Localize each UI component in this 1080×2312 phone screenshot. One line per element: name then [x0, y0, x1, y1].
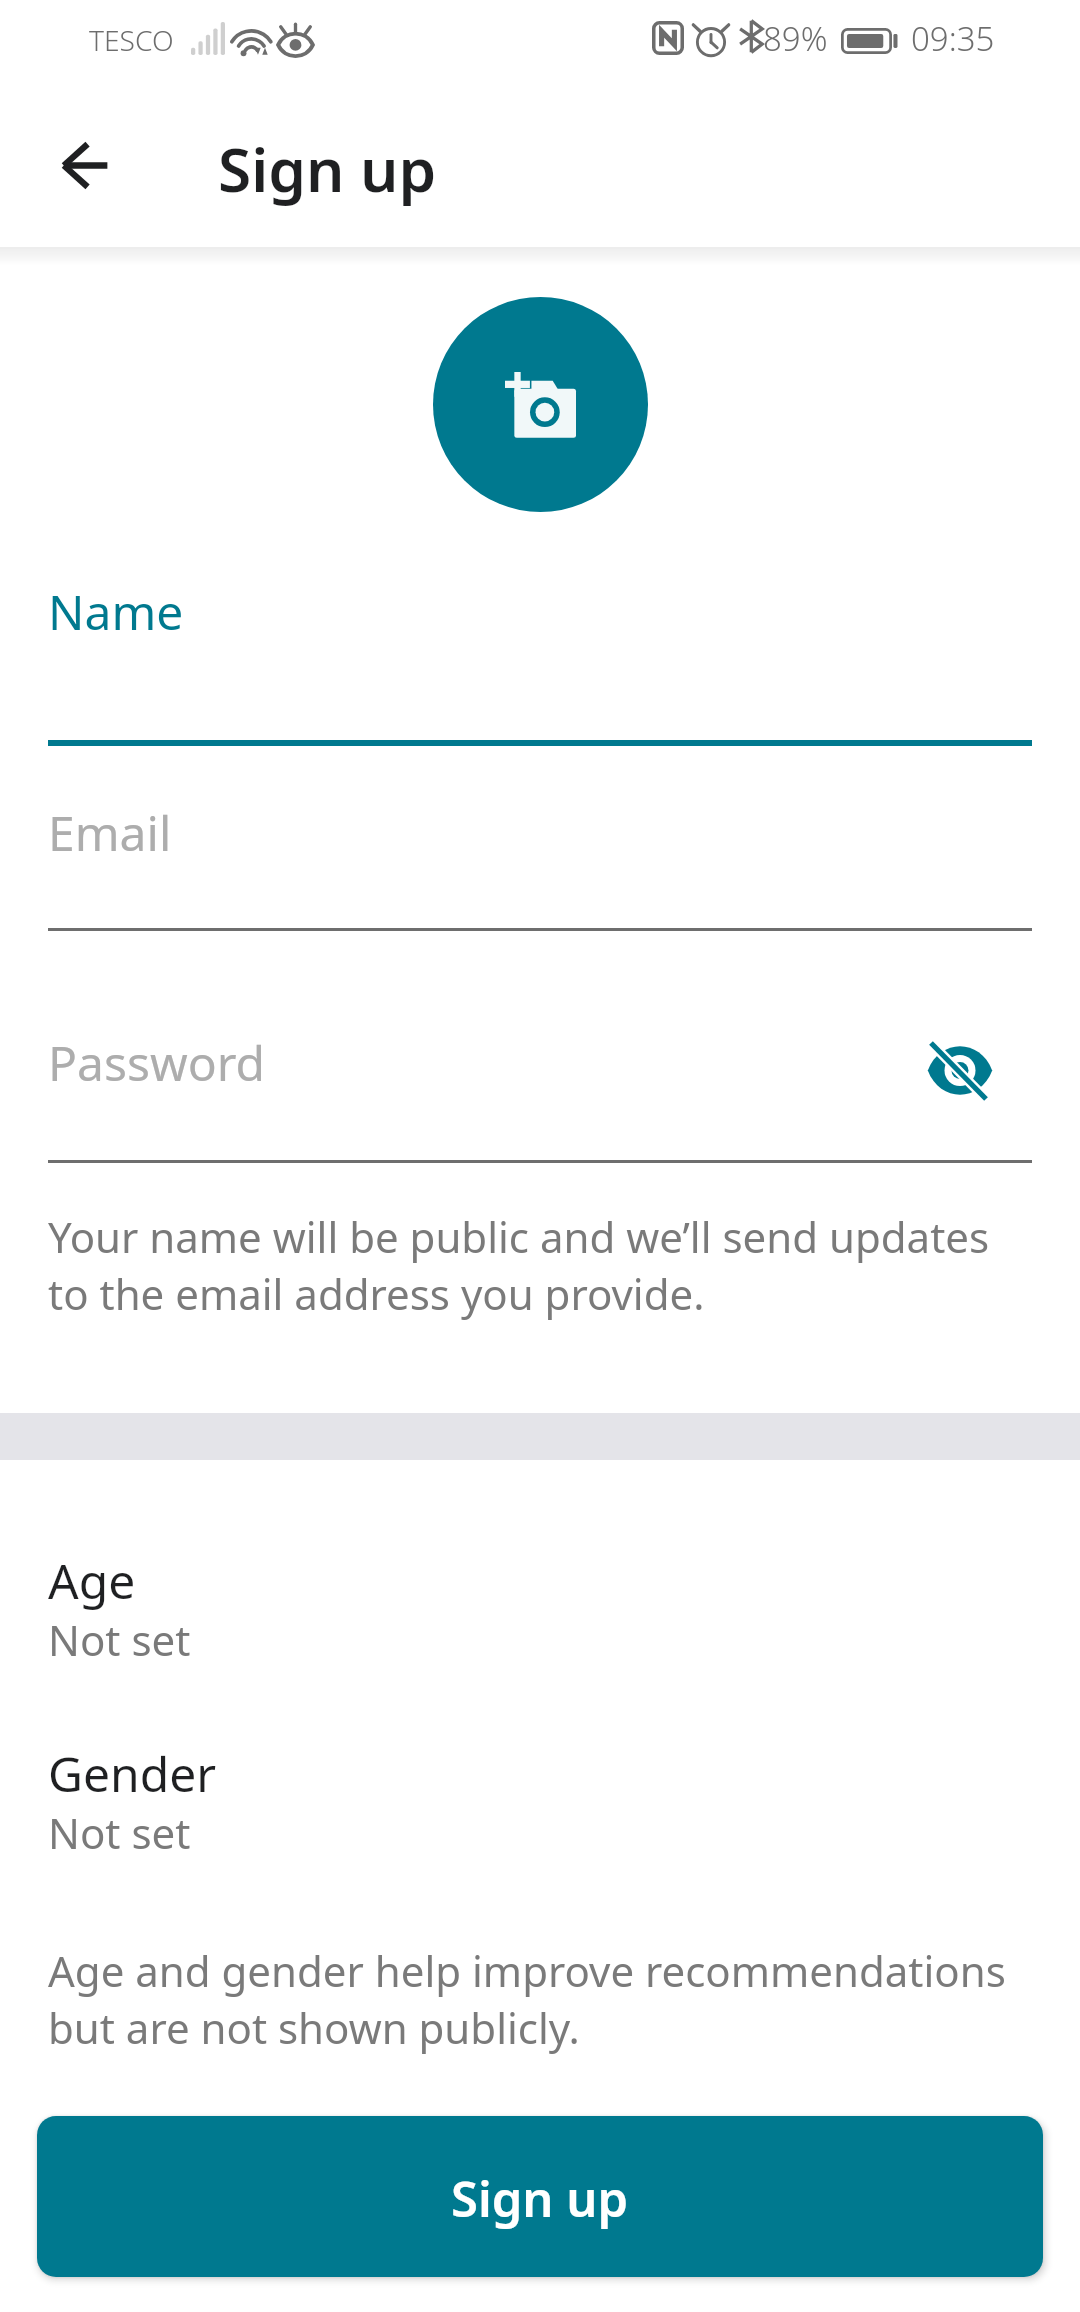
- staticText: Age and gender help improve recommendati…: [48, 1942, 1038, 2056]
- staticText: Age: [48, 1548, 136, 1613]
- button[interactable]: Sign up: [37, 2116, 1043, 2277]
- button[interactable]: Show password: [903, 1018, 1017, 1124]
- staticText: Password: [48, 1030, 266, 1095]
- staticText: TESCO: [89, 21, 174, 59]
- button[interactable]: Back: [30, 111, 138, 219]
- button[interactable]: Add profile photo: [433, 297, 648, 512]
- staticText: Name: [48, 579, 184, 644]
- staticText: 89%: [763, 16, 828, 61]
- staticText: Your name will be public and we’ll send …: [48, 1208, 1038, 1322]
- staticText: 09:35: [911, 16, 995, 61]
- staticText: Sign up: [451, 2165, 629, 2232]
- button[interactable]: [0, 1721, 1080, 1849]
- staticText: Not set: [48, 1611, 191, 1668]
- staticText: Sign up: [218, 128, 437, 210]
- button[interactable]: [0, 1528, 1080, 1656]
- staticText: Gender: [48, 1741, 217, 1806]
- staticText: Not set: [48, 1804, 191, 1861]
- staticText: Email: [48, 800, 172, 865]
